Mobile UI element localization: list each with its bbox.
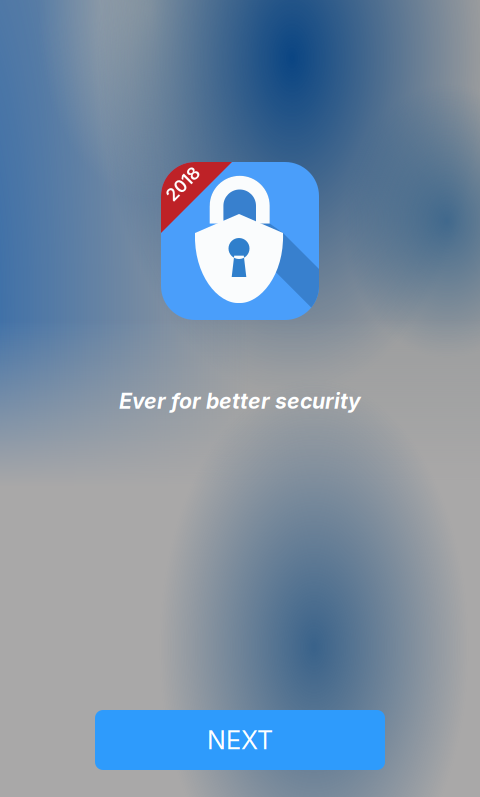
button[interactable]: NEXT: [95, 710, 385, 770]
staticText: Ever for better security: [119, 388, 361, 414]
staticText: 2018: [163, 173, 203, 194]
staticText: NEXT: [207, 725, 273, 755]
